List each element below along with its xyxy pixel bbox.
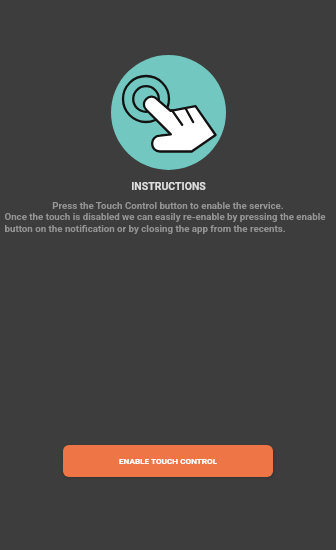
staticText: INSTRUCTIONS [131, 180, 206, 192]
staticText: Once the touch is disabled we can easily… [4, 211, 326, 222]
staticText: button on the notification or by closing… [4, 223, 286, 234]
staticText: Press the Touch Control button to enable… [52, 200, 284, 211]
staticText: ENABLE TOUCH CONTROL [119, 456, 218, 465]
button[interactable]: ENABLE TOUCH CONTROL [63, 445, 273, 477]
